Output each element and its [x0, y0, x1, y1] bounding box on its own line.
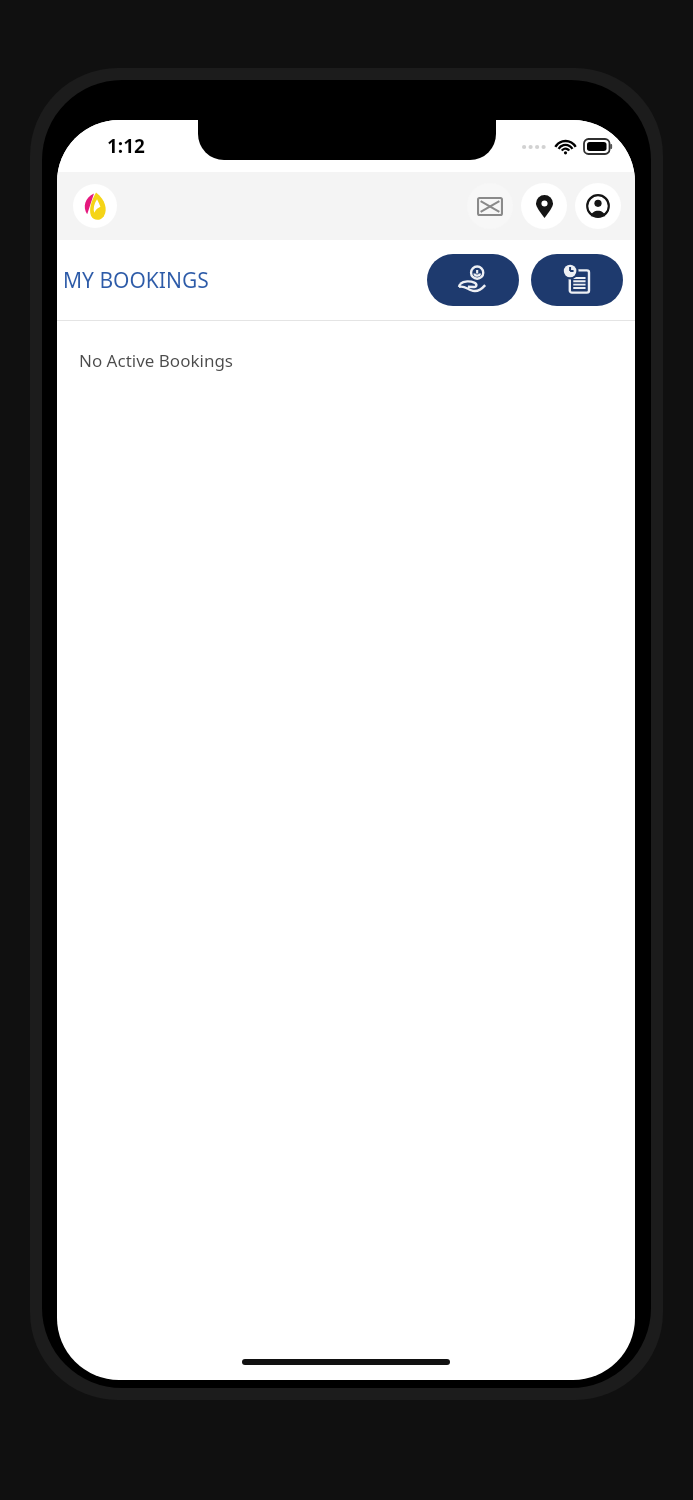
staticText: 1:12: [107, 133, 145, 159]
staticText: MY BOOKINGS: [63, 266, 209, 295]
button[interactable]: Account: [575, 183, 621, 229]
staticText: No Active Bookings: [79, 349, 234, 372]
button[interactable]: Location: [521, 183, 567, 229]
button[interactable]: Messages: [467, 183, 513, 229]
button[interactable]: Booking history: [531, 254, 623, 306]
button[interactable]: Home: [73, 184, 117, 228]
button[interactable]: Request a service: [427, 254, 519, 306]
